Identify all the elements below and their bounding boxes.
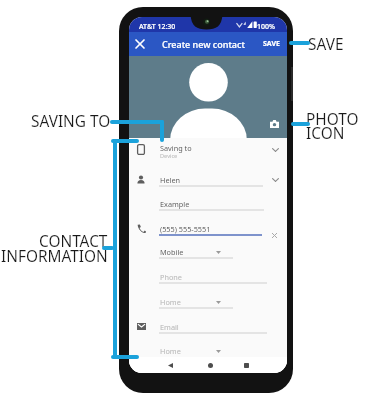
staticText: (555) 555-5551 [160,224,211,234]
staticText: Home [160,346,181,356]
staticText: 100% [257,22,275,32]
staticText: Email [160,322,179,332]
button[interactable]: Phone [129,269,287,293]
staticText: INFORMATION [1,246,108,267]
staticText: PHOTO [306,109,359,130]
staticText: SAVE [308,34,344,55]
staticText: Saving to [160,143,192,153]
button[interactable]: SAVE [261,36,282,52]
staticText: SAVING TO [31,111,111,132]
button[interactable]: Email [129,319,287,343]
button[interactable]: Recents [240,359,252,371]
button[interactable]: Back [164,359,176,371]
button[interactable]: Saving to [129,140,287,166]
button[interactable]: Home [204,359,216,371]
staticText: AT&T 12:30 [139,22,176,32]
staticText: Home [160,297,181,307]
staticText: SAVE [263,39,280,49]
staticText: ICON [306,123,345,144]
button[interactable]: (555) 555-5551 [129,221,287,245]
staticText: Device [160,152,178,160]
staticText: Mobile [160,247,184,257]
button[interactable]: Home [129,294,287,318]
button[interactable]: Close [133,37,147,51]
button[interactable]: Mobile [129,244,287,268]
button[interactable]: Home [129,343,287,367]
staticText: Example [160,199,190,209]
staticText: Helen [160,175,181,185]
button[interactable]: Example [129,196,287,220]
staticText: Create new contact [162,38,245,50]
staticText: CONTACT [39,231,108,252]
staticText: Phone [160,272,182,282]
button[interactable]: Helen [129,172,287,196]
button[interactable]: Change photo [268,118,280,130]
